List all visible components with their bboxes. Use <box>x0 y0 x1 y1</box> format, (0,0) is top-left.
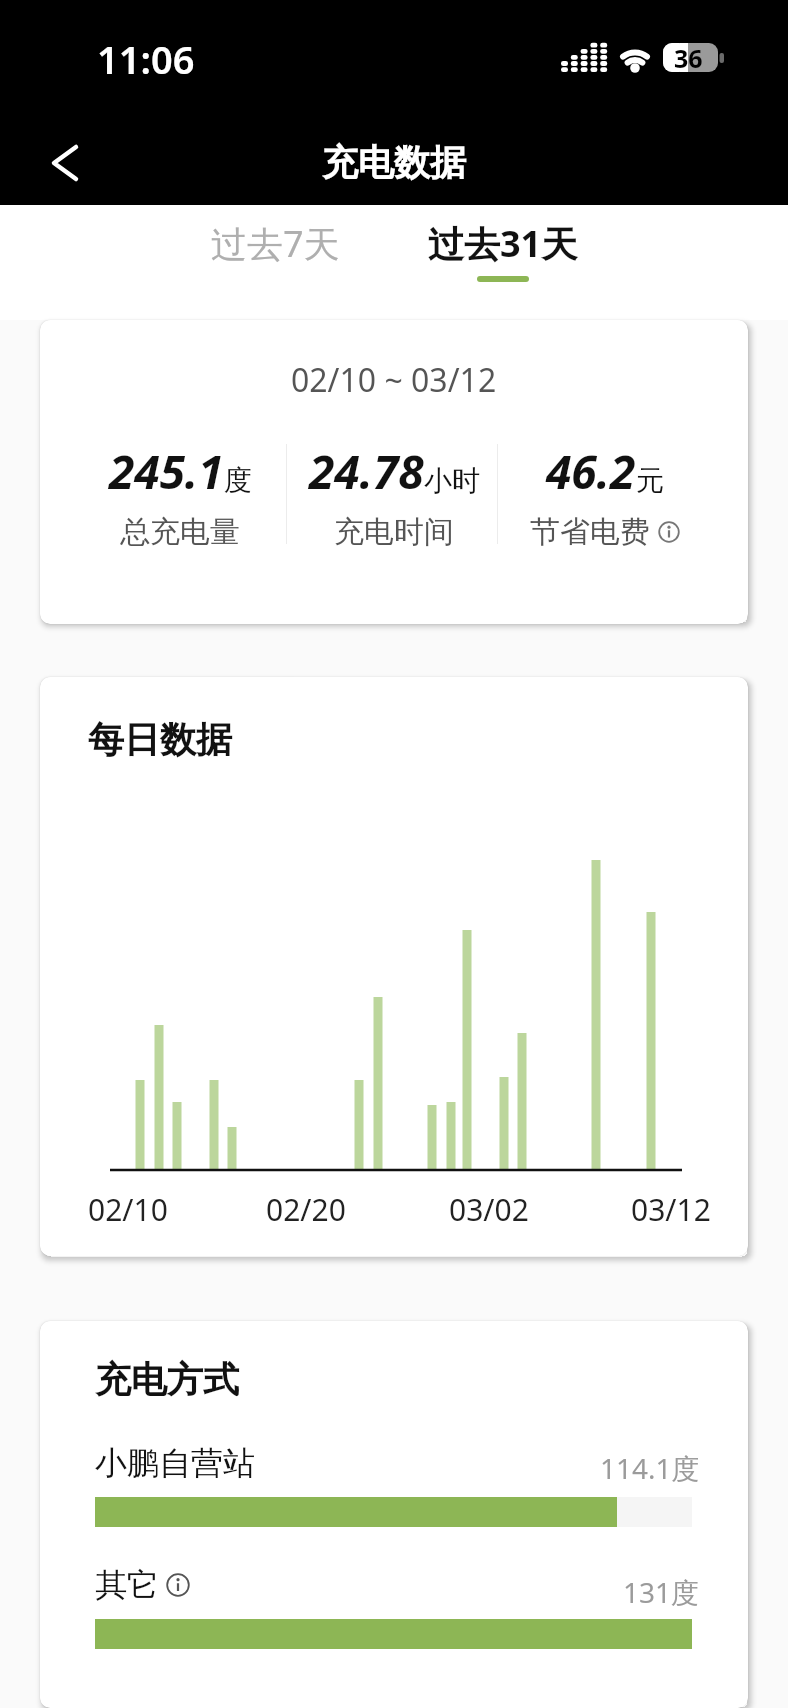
staticText: 36 <box>674 41 703 75</box>
button[interactable]: 过去7天 <box>203 219 348 268</box>
staticText: 度 <box>224 463 252 498</box>
staticText: 03/12 <box>631 1189 711 1230</box>
button[interactable] <box>166 1573 190 1597</box>
staticText: 131度 <box>623 1573 700 1611</box>
staticText: 节省电费 <box>530 513 650 551</box>
staticText: 11:06 <box>97 33 195 85</box>
staticText: 02/20 <box>266 1189 346 1230</box>
staticText: 03/02 <box>449 1189 529 1230</box>
staticText: 24.78 <box>309 440 424 503</box>
button[interactable] <box>95 1497 692 1527</box>
staticText: 过去31天 <box>428 219 578 268</box>
staticText: 02/10 ~ 03/12 <box>291 358 497 402</box>
staticText: 245.1 <box>109 440 224 503</box>
staticText: 充电方式 <box>95 1357 239 1402</box>
staticText: 总充电量 <box>120 513 240 551</box>
staticText: 其它 <box>95 1565 159 1605</box>
button[interactable] <box>658 521 680 543</box>
staticText: 02/10 <box>88 1189 168 1230</box>
button[interactable] <box>40 135 90 191</box>
staticText: 充电时间 <box>334 513 454 551</box>
staticText: 114.1度 <box>600 1449 700 1487</box>
staticText: 充电数据 <box>322 140 466 185</box>
staticText: 元 <box>636 463 664 498</box>
staticText: 过去7天 <box>211 219 340 268</box>
staticText: 小时 <box>424 463 480 498</box>
staticText: 每日数据 <box>88 717 232 762</box>
button[interactable]: 过去31天 <box>420 219 586 282</box>
staticText: 小鹏自营站 <box>95 1443 255 1483</box>
staticText: 46.2 <box>546 440 636 503</box>
